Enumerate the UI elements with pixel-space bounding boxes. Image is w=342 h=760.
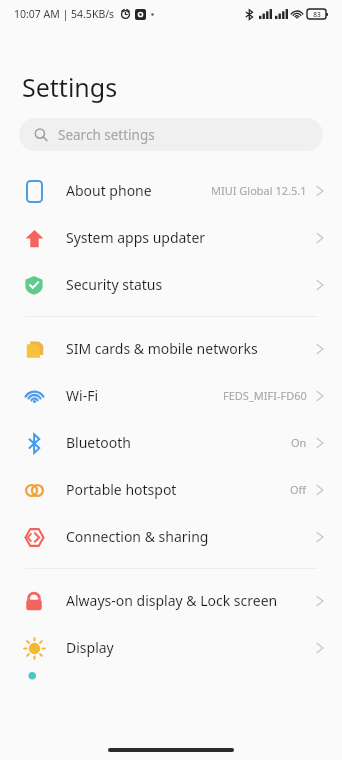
button[interactable]: System apps updater — [0, 214, 342, 261]
staticText: 83 — [313, 10, 321, 19]
staticText: FEDS_MIFI-FD60 — [223, 388, 307, 403]
button[interactable]: Portable hotspot — [0, 466, 342, 513]
staticText: Connection & sharing — [66, 527, 209, 546]
button[interactable]: Always-on display & Lock screen — [0, 577, 342, 624]
staticText: Settings — [22, 70, 118, 104]
staticText: Security status — [66, 275, 163, 294]
button[interactable]: Display — [0, 624, 342, 671]
button[interactable]: Wi-Fi — [0, 372, 342, 419]
staticText: SIM cards & mobile networks — [66, 339, 258, 358]
button[interactable]: About phone — [0, 167, 342, 214]
staticText: Portable hotspot — [66, 480, 177, 499]
button[interactable]: Connection & sharing — [0, 513, 342, 560]
button[interactable]: Security status — [0, 261, 342, 308]
staticText: Bluetooth — [66, 433, 131, 452]
staticText: Search settings — [58, 126, 155, 144]
button[interactable]: Bluetooth — [0, 419, 342, 466]
staticText: Display — [66, 638, 114, 657]
staticText: About phone — [66, 181, 152, 200]
button[interactable]: SIM cards & mobile networks — [0, 325, 342, 372]
staticText: Always-on display & Lock screen — [66, 591, 278, 610]
staticText: Wi-Fi — [66, 386, 99, 405]
staticText: MIUI Global 12.5.1 — [211, 183, 307, 198]
button[interactable]: Search settings — [19, 118, 323, 151]
staticText: On — [291, 435, 307, 450]
staticText: 10:07 AM | 54.5KB/s — [14, 7, 115, 21]
staticText: Off — [290, 482, 307, 497]
staticText: System apps updater — [66, 228, 206, 247]
